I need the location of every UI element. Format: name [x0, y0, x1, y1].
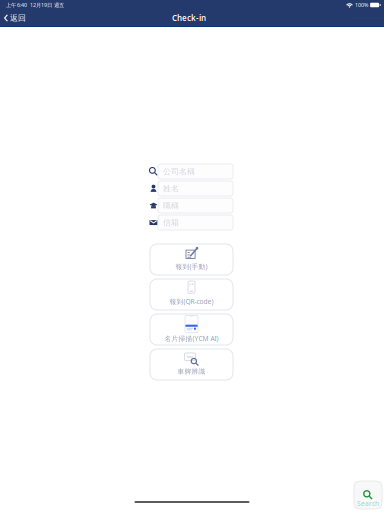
button[interactable]: 報到(QR-code) — [150, 279, 233, 310]
staticText: 車牌辨識 — [177, 367, 205, 376]
staticText: 姓名 — [163, 184, 179, 193]
button[interactable]: 報到(手動) — [150, 244, 233, 275]
staticText: 信箱 — [163, 218, 179, 227]
staticText: Search — [357, 499, 379, 508]
staticText: 100% — [355, 1, 368, 9]
staticText: Check-in — [172, 13, 206, 23]
button[interactable]: 名片掃描(YCM AI) — [150, 314, 233, 345]
staticText: 上午 6:40 12月19日 週五 — [6, 1, 64, 9]
staticText: 職稱 — [163, 201, 179, 210]
button[interactable]: 返回 — [0, 9, 26, 26]
button[interactable]: 車牌辨識 — [150, 349, 233, 380]
button[interactable]: Search — [354, 481, 382, 509]
staticText: 返回 — [10, 13, 26, 23]
staticText: 公司名稱 — [163, 167, 195, 176]
staticText: 報到(QR-code) — [169, 297, 213, 306]
staticText: 報到(手動) — [175, 262, 207, 271]
staticText: 名片掃描(YCM AI) — [164, 334, 218, 343]
